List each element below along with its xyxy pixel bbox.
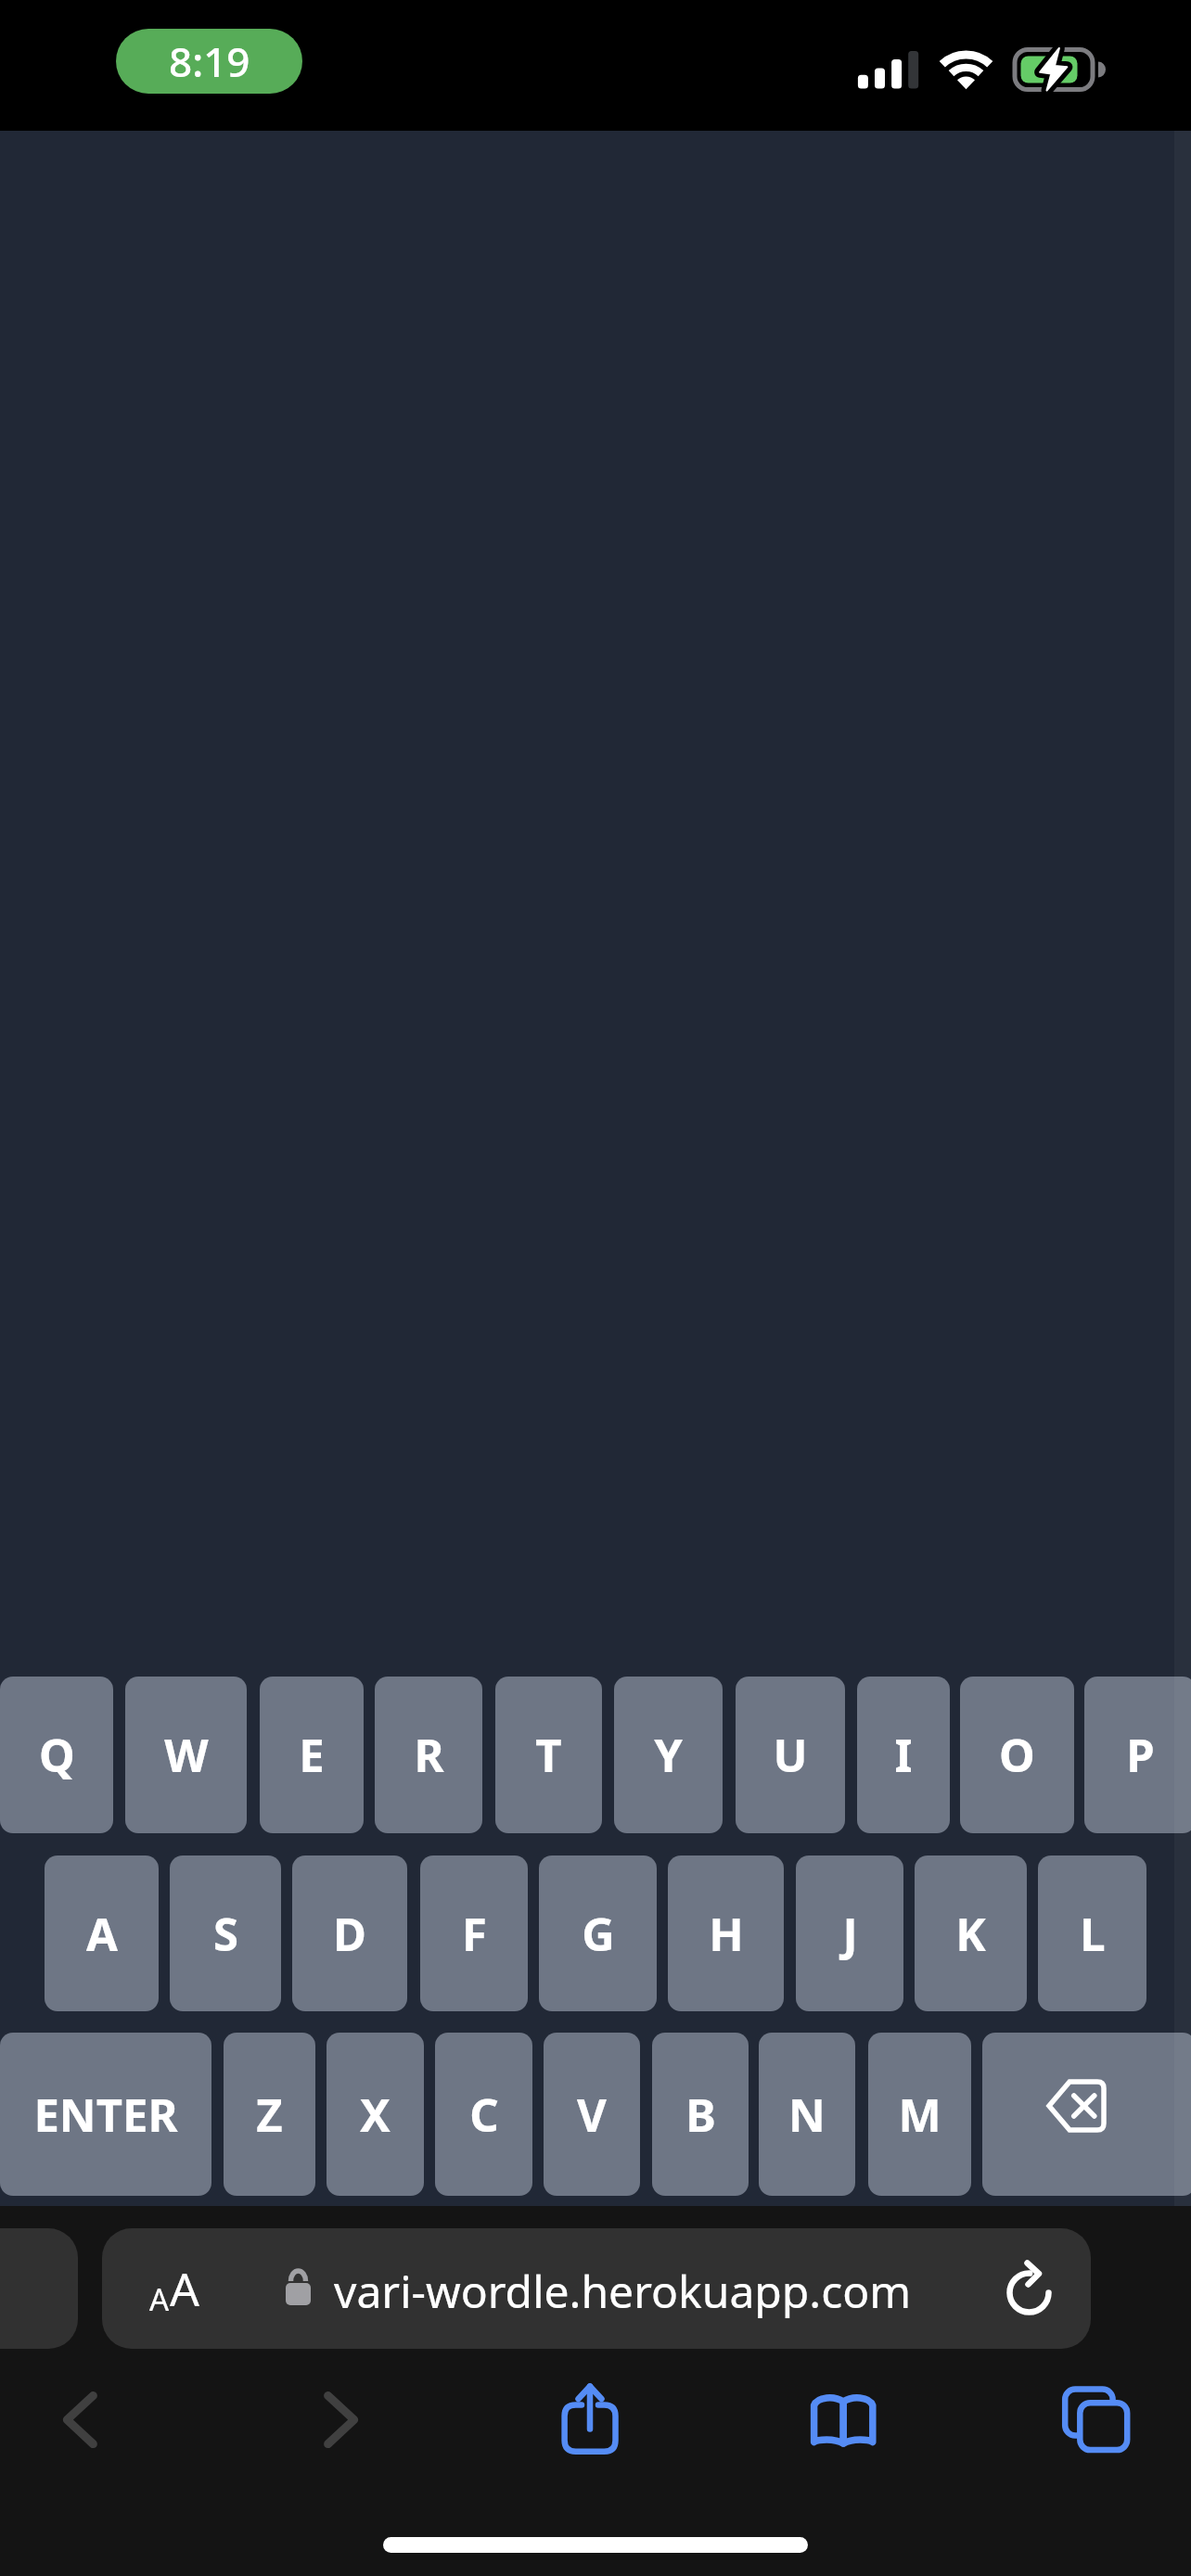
button[interactable]: H xyxy=(668,1855,784,2011)
button[interactable]: Bookmarks xyxy=(800,2378,889,2467)
staticText: S xyxy=(213,1903,238,1965)
staticText: Q xyxy=(39,1724,75,1786)
button[interactable]: 8:19 xyxy=(116,29,302,94)
button[interactable]: U xyxy=(736,1677,845,1833)
button[interactable]: L xyxy=(1038,1855,1146,2011)
staticText: I xyxy=(894,1724,913,1786)
staticText: U xyxy=(773,1724,808,1786)
staticText: M xyxy=(898,2084,941,2146)
button[interactable]: F xyxy=(420,1855,528,2011)
staticText: Z xyxy=(256,2084,283,2146)
button[interactable]: Forward xyxy=(289,2368,391,2470)
button[interactable]: Back xyxy=(28,2368,130,2470)
staticText: K xyxy=(955,1903,986,1965)
staticText: A xyxy=(86,1903,118,1965)
button[interactable]: Q xyxy=(0,1677,113,1833)
button[interactable]: T xyxy=(495,1677,602,1833)
staticText: F xyxy=(462,1903,487,1965)
staticText: L xyxy=(1080,1903,1106,1965)
button[interactable]: V xyxy=(544,2033,640,2196)
staticText: W xyxy=(164,1724,209,1786)
staticText: N xyxy=(788,2084,826,2146)
staticText: P xyxy=(1126,1724,1155,1786)
staticText: T xyxy=(535,1724,562,1786)
button[interactable]: Backspace xyxy=(982,2033,1191,2196)
button[interactable]: ENTER xyxy=(0,2033,211,2196)
button[interactable]: D xyxy=(292,1855,407,2011)
staticText: E xyxy=(299,1724,325,1786)
button[interactable]: Reload xyxy=(988,2248,1071,2331)
button[interactable]: C xyxy=(435,2033,532,2196)
staticText: G xyxy=(582,1903,615,1965)
button[interactable]: P xyxy=(1084,1677,1191,1833)
staticText: D xyxy=(333,1903,366,1965)
staticText: J xyxy=(842,1903,858,1965)
staticText: O xyxy=(999,1724,1035,1786)
button[interactable]: Share xyxy=(547,2373,636,2462)
button[interactable]: I xyxy=(857,1677,950,1833)
button[interactable]: W xyxy=(125,1677,247,1833)
button[interactable]: X xyxy=(327,2033,424,2196)
button[interactable]: S xyxy=(170,1855,281,2011)
button[interactable]: R xyxy=(375,1677,482,1833)
button[interactable]: K xyxy=(915,1855,1027,2011)
staticText: vari-wordle.herokuapp.com xyxy=(334,2261,912,2321)
button[interactable]: M xyxy=(868,2033,971,2196)
staticText: A xyxy=(149,2278,170,2320)
staticText: V xyxy=(577,2084,607,2146)
staticText: 8:19 xyxy=(169,33,250,89)
button[interactable] xyxy=(102,2228,1091,2349)
button[interactable]: A xyxy=(45,1855,159,2011)
button[interactable]: G xyxy=(539,1855,657,2011)
button[interactable]: Z xyxy=(224,2033,315,2196)
staticText: C xyxy=(469,2084,499,2146)
staticText: ENTER xyxy=(33,2084,178,2146)
staticText: B xyxy=(685,2084,716,2146)
button[interactable]: O xyxy=(960,1677,1074,1833)
button[interactable]: Y xyxy=(614,1677,723,1833)
staticText: Y xyxy=(654,1724,683,1786)
button[interactable]: Tabs xyxy=(1054,2378,1143,2467)
button[interactable]: N xyxy=(759,2033,855,2196)
other: Backspace xyxy=(1049,2082,1104,2130)
staticText: A xyxy=(170,2257,199,2320)
button[interactable]: Text size xyxy=(130,2239,218,2337)
button[interactable]: E xyxy=(260,1677,364,1833)
button[interactable]: J xyxy=(796,1855,903,2011)
staticText: X xyxy=(360,2084,391,2146)
button[interactable]: B xyxy=(652,2033,749,2196)
staticText: R xyxy=(414,1724,444,1786)
staticText: H xyxy=(709,1903,744,1965)
